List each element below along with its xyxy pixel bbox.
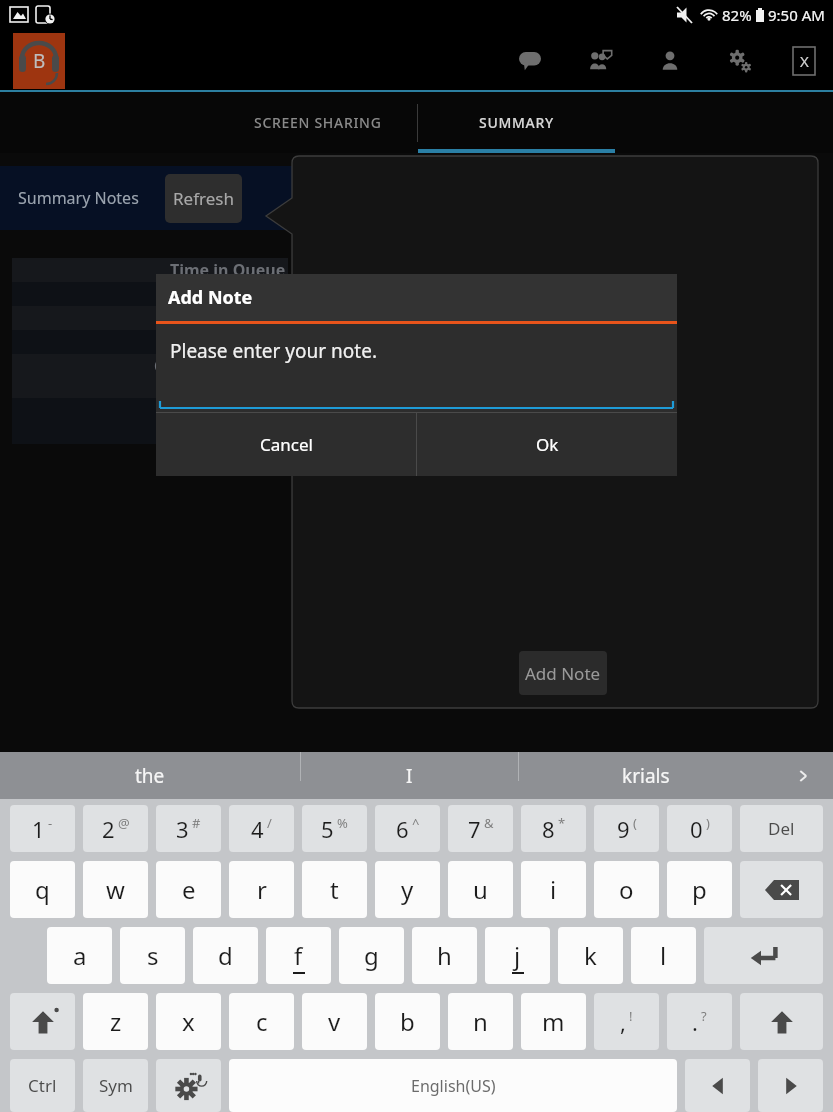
button[interactable]: Shift [740,993,823,1050]
button[interactable]: SUMMARY [418,92,615,153]
staticText: 1 [32,814,45,844]
staticText: ! [629,1007,633,1025]
button[interactable]: r [229,861,294,918]
button[interactable]: 6 [375,805,440,852]
staticText: g [364,939,379,972]
button[interactable]: Add Note [519,651,607,695]
button[interactable]: More suggestions [773,752,833,799]
staticText: d [218,939,233,972]
staticText: 7 [468,814,481,844]
staticText: j [514,939,521,972]
button[interactable]: 4 [229,805,294,852]
staticText: SCREEN SHARING [254,113,382,132]
button[interactable]: Settings [723,44,757,78]
button[interactable]: SCREEN SHARING [219,92,417,153]
button[interactable]: Right [758,1059,823,1112]
button[interactable]: v [302,993,367,1050]
staticText: X [800,51,809,71]
button[interactable]: g [339,927,404,984]
button[interactable]: 1 [10,805,75,852]
staticText: Ok [536,433,559,456]
button[interactable]: w [83,861,148,918]
button[interactable]: Sym [83,1059,148,1112]
button[interactable]: z [83,993,148,1050]
button[interactable]: d [193,927,258,984]
button[interactable]: c [229,993,294,1050]
button[interactable]: a [47,927,112,984]
button[interactable]: 5 [302,805,367,852]
button[interactable]: p [667,861,732,918]
staticText: k [584,939,597,972]
button[interactable]: Shift [10,993,75,1050]
staticText: ) [706,814,710,832]
staticText: @ [118,814,130,832]
staticText: Refresh [173,187,234,210]
staticText: Cancel [260,433,313,456]
button[interactable]: Ok [417,413,677,476]
staticText: o [619,873,634,906]
button[interactable]: Customer [653,44,687,78]
staticText: IP Address [201,307,286,329]
button[interactable]: Enter [704,927,823,984]
staticText: i [550,873,557,906]
button[interactable]: English(US) [229,1059,677,1112]
button[interactable]: App logo [13,33,65,89]
button[interactable]: e [156,861,221,918]
button[interactable]: Left [685,1059,750,1112]
button[interactable]: l [631,927,696,984]
button[interactable]: i [521,861,586,918]
staticText: 8 [542,814,555,844]
staticText: c [256,1005,268,1038]
staticText: * [558,814,566,832]
button[interactable]: 8 [521,805,586,852]
staticText: % [337,814,348,832]
button[interactable]: Chat [513,44,547,78]
button[interactable]: n [448,993,513,1050]
button[interactable]: 9 [594,805,659,852]
button[interactable]: Ctrl [10,1059,75,1112]
button[interactable]: Refresh [165,174,242,223]
button[interactable]: Close [789,46,819,76]
button[interactable]: o [594,861,659,918]
staticText: p [692,873,707,906]
button[interactable]: 3 [156,805,221,852]
button[interactable]: m [521,993,586,1050]
button[interactable]: 0 [667,805,732,852]
button[interactable]: Agents [583,44,617,78]
button[interactable]: f [266,927,331,984]
button[interactable]: b [375,993,440,1050]
button[interactable]: u [448,861,513,918]
button[interactable]: . [667,993,732,1050]
button[interactable]: j [485,927,550,984]
staticText: 9 [617,814,630,844]
staticText: h [437,939,452,972]
staticText: Please enter your note. [170,338,377,364]
button[interactable]: 2 [83,805,148,852]
button[interactable]: x [156,993,221,1050]
staticText: f [294,939,303,972]
button[interactable]: Backspace [740,861,823,918]
button[interactable]: 7 [448,805,513,852]
staticText: ( [633,814,637,832]
button[interactable]: , [594,993,659,1050]
button[interactable]: h [412,927,477,984]
button[interactable]: I [301,752,518,799]
button[interactable]: Keyboard settings [156,1059,221,1112]
button[interactable]: s [120,927,185,984]
staticText: m [542,1005,565,1038]
button[interactable]: the [0,752,300,799]
staticText: 82% [722,5,752,25]
button[interactable]: Del [740,805,823,852]
button[interactable]: q [10,861,75,918]
staticText: s [147,939,159,972]
button[interactable]: y [375,861,440,918]
staticText: I [406,763,413,789]
staticText: ? [701,1007,707,1025]
button[interactable]: krials [519,752,773,799]
button[interactable]: Cancel [156,413,416,476]
staticText: . [692,1007,698,1037]
staticText: t [330,873,339,906]
button[interactable]: t [302,861,367,918]
staticText: , [620,1007,626,1037]
button[interactable]: k [558,927,623,984]
